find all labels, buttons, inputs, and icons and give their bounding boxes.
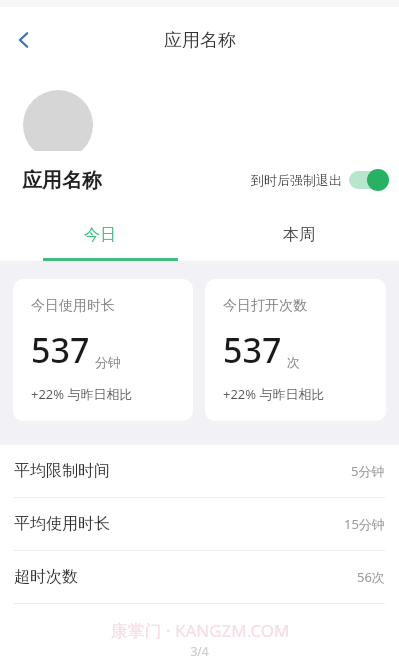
staticText: 今日 (84, 225, 116, 245)
button[interactable]: 到时后强制退出 (249, 162, 391, 198)
button[interactable]: 平均限制时间 (0, 445, 399, 497)
staticText: 应用名称 (164, 29, 236, 52)
button[interactable]: Back (6, 22, 42, 58)
staticText: 537 (223, 327, 282, 373)
staticText: +22% 与昨日相比 (223, 385, 325, 403)
staticText: 537 (31, 327, 90, 373)
button[interactable]: 今日使用时长 (13, 279, 193, 421)
staticText: 次 (287, 354, 300, 370)
button[interactable]: 平均使用时长 (0, 498, 399, 550)
staticText: 分钟 (95, 354, 121, 370)
staticText: 平均限制时间 (14, 461, 110, 481)
button[interactable]: 今日打开次数 (205, 279, 386, 421)
button[interactable]: 今日 (0, 209, 199, 261)
staticText: 今日打开次数 (223, 297, 307, 315)
staticText: +22% 与昨日相比 (31, 385, 133, 403)
staticText: 应用名称 (22, 168, 102, 193)
staticText: 康掌门 · KANGZM.COM (110, 619, 290, 642)
staticText: 56次 (357, 568, 385, 586)
staticText: 3/4 (190, 643, 209, 659)
staticText: 5分钟 (351, 462, 385, 480)
staticText: 15分钟 (344, 515, 385, 533)
staticText: 今日使用时长 (31, 297, 115, 315)
staticText: 到时后强制退出 (251, 172, 342, 188)
staticText: 超时次数 (14, 567, 78, 587)
staticText: 平均使用时长 (14, 514, 110, 534)
staticText: 本周 (283, 225, 315, 245)
button[interactable]: 本周 (199, 209, 399, 261)
button[interactable]: 超时次数 (0, 551, 399, 603)
